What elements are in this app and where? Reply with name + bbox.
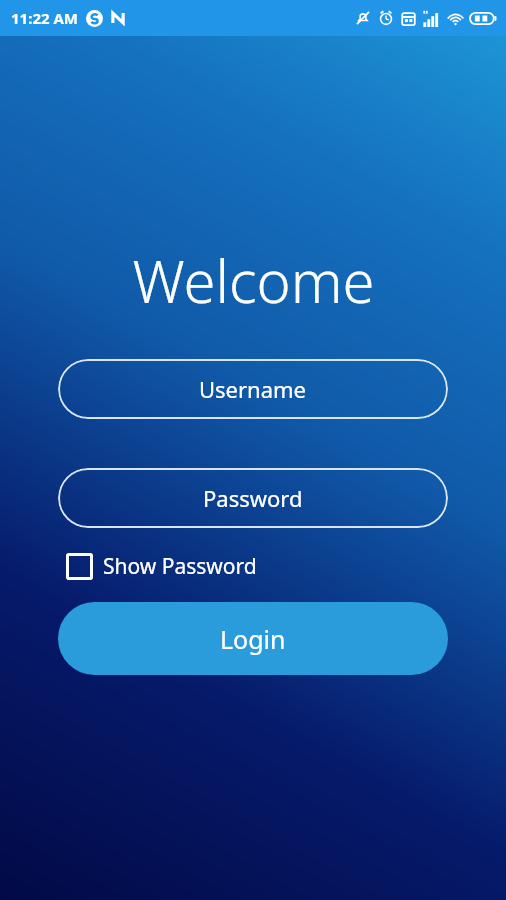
button[interactable]: Show Password: [58, 549, 448, 583]
staticText: Username: [199, 374, 307, 404]
staticText: Login: [220, 622, 286, 656]
staticText: 11:22 AM: [11, 8, 78, 28]
staticText: Password: [203, 483, 303, 513]
staticText: Welcome: [132, 241, 375, 320]
button[interactable]: Username: [58, 359, 448, 419]
staticText: Show Password: [103, 552, 257, 581]
button[interactable]: Password: [58, 468, 448, 528]
button[interactable]: Login: [58, 602, 448, 675]
